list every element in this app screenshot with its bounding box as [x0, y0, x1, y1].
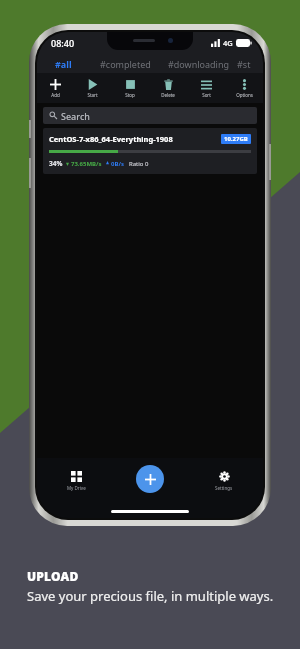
- staticText: Start: [87, 92, 98, 98]
- button[interactable]: #completed: [89, 54, 161, 73]
- staticText: #completed: [100, 58, 151, 70]
- staticText: Ratio 0: [129, 160, 149, 168]
- staticText: Options: [236, 92, 253, 98]
- staticText: #all: [55, 58, 72, 70]
- staticText: #st: [237, 58, 251, 70]
- staticText: 08:40: [51, 37, 75, 49]
- button[interactable]: Options: [225, 73, 263, 103]
- button[interactable]: My Drive: [63, 467, 90, 495]
- button[interactable]: Start: [74, 73, 111, 103]
- button[interactable]: Add torrent: [136, 465, 164, 493]
- button[interactable]: Settings: [211, 467, 237, 495]
- staticText: 73.65MB/s: [71, 160, 102, 168]
- staticText: #downloading: [168, 58, 230, 70]
- staticText: My Drive: [67, 485, 86, 491]
- button[interactable]: #all: [37, 54, 89, 73]
- staticText: Save your precious file, in multiple way…: [27, 587, 274, 605]
- staticText: 4G: [223, 38, 233, 48]
- staticText: CentOS-7-x86_64-Everything-1908: [49, 134, 217, 144]
- button[interactable]: #downloading: [161, 54, 237, 73]
- staticText: 34%: [49, 159, 63, 168]
- staticText: Sort: [202, 92, 211, 98]
- staticText: Delete: [161, 92, 175, 98]
- staticText: 10.27GB: [224, 135, 248, 143]
- button[interactable]: Add: [37, 73, 74, 103]
- staticText: Search: [61, 110, 90, 122]
- button[interactable]: Search: [43, 107, 257, 124]
- button[interactable]: Sort: [187, 73, 225, 103]
- staticText: UPLOAD: [27, 568, 79, 584]
- staticText: Add: [51, 92, 60, 98]
- button[interactable]: CentOS-7-x86_64-Everything-1908: [43, 128, 257, 174]
- button[interactable]: #st: [237, 54, 263, 73]
- button[interactable]: Stop: [111, 73, 149, 103]
- staticText: Stop: [125, 92, 135, 98]
- staticText: Settings: [215, 485, 233, 491]
- staticText: 0B/s: [111, 160, 124, 168]
- button[interactable]: Delete: [149, 73, 187, 103]
